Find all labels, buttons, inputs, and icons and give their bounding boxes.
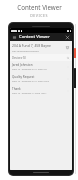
staticText: Content Viewer (19, 34, 50, 40)
staticText: Quality Request (12, 75, 35, 79)
button[interactable]: Search (65, 55, 70, 60)
staticText: Jared Johnston (12, 63, 33, 67)
staticText: Devices (5) (12, 56, 26, 60)
button[interactable]: 204 A Fund 7, 458 Bayne (10, 41, 72, 54)
button[interactable]: Quality Request (10, 73, 72, 85)
staticText: Sails 10 - Example 2711 Prep 100.2 (12, 80, 50, 83)
button[interactable]: Thank (10, 85, 72, 97)
button[interactable]: Delete (65, 45, 70, 50)
staticText: Sails 10 - Example 2711 Prep 101 (12, 68, 48, 71)
staticText: 204 A Fund 7, 458 Bayne (12, 43, 51, 48)
button[interactable]: Jared Johnston (10, 61, 72, 73)
staticText: cdn.re/branded-content (12, 49, 39, 52)
button[interactable]: Navigate up (12, 35, 17, 40)
staticText: DEVICES (30, 13, 48, 18)
button[interactable]: Devices (5) (10, 54, 72, 61)
button[interactable]: Close (65, 35, 70, 40)
staticText: Sails 10 - Example 11 Prep 100.1 (12, 92, 47, 95)
staticText: Thank (12, 87, 21, 91)
staticText: Content Viewer (17, 3, 62, 11)
